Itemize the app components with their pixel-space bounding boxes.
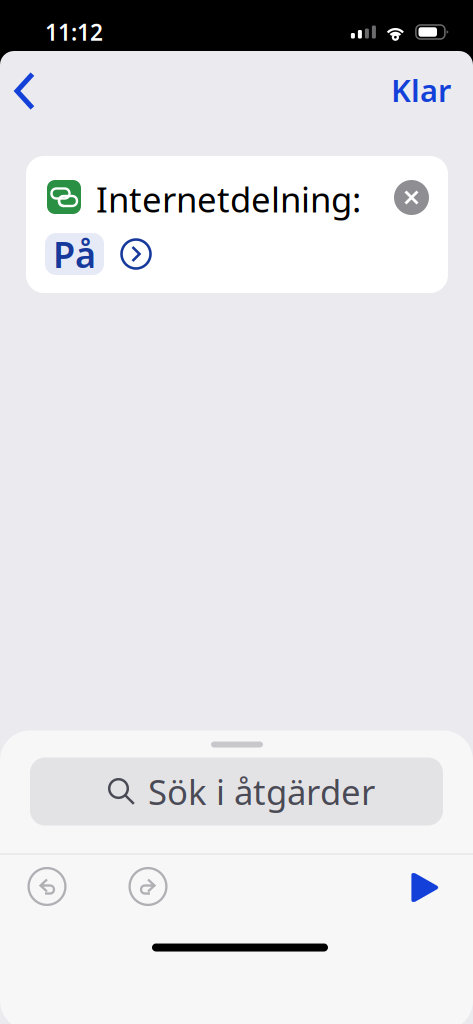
button[interactable]: Klar	[383, 65, 459, 115]
staticText: På	[53, 230, 96, 278]
button[interactable]: På	[45, 233, 104, 275]
button[interactable]: Tillbaka	[2, 65, 48, 117]
staticText: Sök i åtgärder	[148, 768, 375, 814]
button[interactable]: Visa parametrar	[120, 238, 152, 270]
button[interactable]: Ta bort	[394, 180, 429, 215]
button[interactable]: Sök i åtgärder	[30, 757, 443, 825]
staticText: Internetdelning:	[96, 176, 361, 222]
button[interactable]: Gör om	[128, 866, 168, 906]
button[interactable]: Kör genväg	[410, 871, 440, 903]
staticText: Klar	[391, 70, 451, 110]
staticText: 11:12	[45, 17, 103, 47]
button[interactable]: Ångra	[27, 866, 67, 906]
